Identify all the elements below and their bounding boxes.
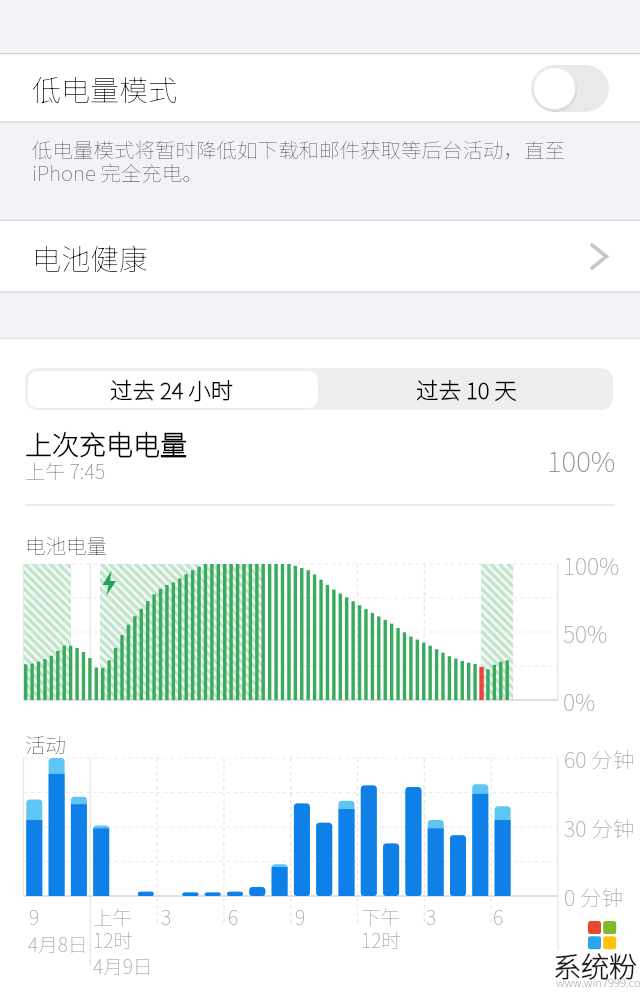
staticText: 60 分钟 <box>564 743 635 774</box>
staticText: 6 <box>228 902 239 930</box>
staticText: 6 <box>493 902 504 930</box>
staticText: 下午 <box>361 902 401 930</box>
button[interactable] <box>319 368 613 410</box>
staticText: 4月9日 <box>93 951 153 979</box>
staticText: 0 分钟 <box>564 881 623 912</box>
staticText: 低电量模式 <box>32 67 178 109</box>
staticText: 上午 <box>93 902 133 930</box>
staticText: www.win7999.com <box>556 974 640 991</box>
staticText: 50% <box>563 616 608 649</box>
staticText: 过去 10 天 <box>416 373 517 406</box>
staticText: 3 <box>161 902 172 930</box>
staticText: 过去 24 小时 <box>110 373 234 406</box>
staticText: 12时 <box>93 925 133 953</box>
button[interactable] <box>0 221 640 292</box>
staticText: 电池电量 <box>25 530 107 560</box>
staticText: 电池健康 <box>32 236 149 278</box>
staticText: 12时 <box>361 925 401 953</box>
staticText: 9 <box>295 902 306 930</box>
staticText: 4月8日 <box>28 929 88 957</box>
staticText: 低电量模式将暂时降低如下载和邮件获取等后台活动，直至 <box>32 134 565 164</box>
staticText: 30 分钟 <box>564 812 635 843</box>
button[interactable] <box>27 370 319 409</box>
staticText: 100% <box>563 548 620 581</box>
button[interactable] <box>0 54 640 122</box>
staticText: 系统粉 <box>553 945 638 986</box>
button[interactable] <box>531 65 609 112</box>
staticText: 100% <box>547 440 616 481</box>
staticText: 9 <box>29 902 40 930</box>
staticText: iPhone 完全充电。 <box>32 157 203 187</box>
staticText: 上次充电电量 <box>25 424 187 463</box>
staticText: 0% <box>563 684 596 717</box>
staticText: 活动 <box>25 729 66 759</box>
staticText: 3 <box>426 902 437 930</box>
staticText: 上午 7:45 <box>25 456 106 485</box>
